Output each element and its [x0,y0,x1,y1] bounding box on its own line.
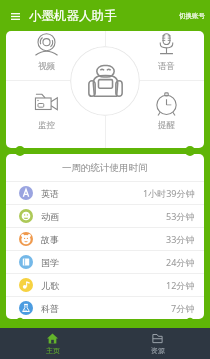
staticText: 科普 [41,303,59,314]
button[interactable]: 科普 [6,297,204,319]
button[interactable]: 切换账号 [179,12,205,20]
button[interactable]: 语音 [142,33,190,72]
staticText: 提醒 [158,120,175,131]
staticText: 儿歌 [41,280,59,291]
button[interactable]: 视频 [22,33,70,72]
staticText: 一周的统计使用时间 [62,162,148,174]
staticText: 1小时39分钟 [143,187,195,199]
staticText: 12分钟 [166,279,195,291]
staticText: 主页 [46,346,60,355]
button[interactable]: 监控 [22,92,70,131]
button[interactable]: 提醒 [142,92,190,131]
button[interactable]: 英语 [6,182,204,204]
button[interactable]: Robot assistant [70,46,140,116]
staticText: 国学 [41,257,59,268]
staticText: 故事 [41,234,59,245]
button[interactable]: 资源 [105,328,210,359]
staticText: 英语 [41,188,59,199]
button[interactable]: 动画 [6,205,204,227]
staticText: 7分钟 [171,302,195,314]
staticText: 视频 [38,61,55,72]
staticText: 小墨机器人助手 [29,8,117,24]
button[interactable]: 国学 [6,251,204,273]
staticText: 切换账号 [179,12,205,20]
staticText: 动画 [41,211,59,222]
staticText: 资源 [151,346,165,355]
button[interactable]: 儿歌 [6,274,204,296]
staticText: 监控 [38,120,55,131]
button[interactable]: Menu [7,8,23,24]
button[interactable]: 主页 [0,328,105,359]
button[interactable]: 故事 [6,228,204,250]
staticText: 24分钟 [166,256,195,268]
staticText: 53分钟 [166,210,195,222]
staticText: 语音 [158,61,175,72]
staticText: 33分钟 [166,233,195,245]
